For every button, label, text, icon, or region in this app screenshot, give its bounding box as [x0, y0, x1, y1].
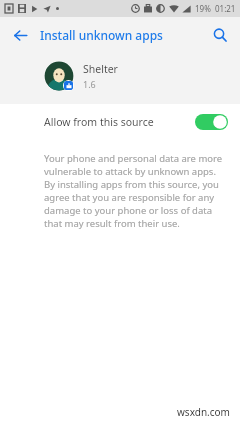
staticText: wsxdn.com	[177, 405, 230, 419]
staticText: 19%	[195, 3, 211, 14]
staticText: 1.6	[83, 78, 96, 90]
staticText: Shelter	[83, 62, 118, 76]
staticText: Install unknown apps	[40, 27, 163, 43]
button[interactable]: Back	[6, 21, 34, 49]
staticText: 01:21	[215, 3, 236, 14]
button[interactable]: Allow from this source	[0, 104, 240, 140]
staticText: Your phone and personal data are more vu…	[44, 152, 226, 230]
button[interactable]: Shelter	[0, 53, 240, 98]
button[interactable]: Search	[206, 21, 234, 49]
staticText: Allow from this source	[44, 115, 195, 129]
